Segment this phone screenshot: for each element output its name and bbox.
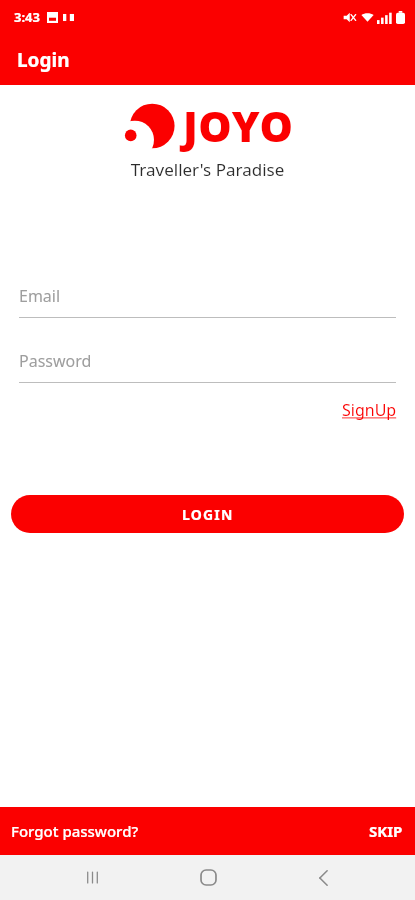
button[interactable]: Home [185, 855, 231, 900]
button[interactable]: SKIP [359, 821, 415, 841]
button[interactable]: Back [300, 855, 346, 900]
button[interactable]: Forgot password? [0, 821, 147, 841]
button[interactable]: SignUp [340, 397, 399, 423]
staticText: Email [19, 285, 61, 307]
button[interactable]: Email [19, 285, 396, 318]
button[interactable]: Recent apps [69, 855, 115, 900]
staticText: Traveller's Paradise [0, 158, 415, 181]
button[interactable]: LOGIN [11, 495, 404, 533]
staticText: Password [19, 350, 92, 372]
button[interactable]: Password [19, 350, 396, 383]
staticText: 3:43 [14, 8, 40, 26]
staticText: LOGIN [182, 505, 234, 524]
staticText: Login [17, 47, 70, 73]
staticText: JOYO [183, 97, 294, 154]
